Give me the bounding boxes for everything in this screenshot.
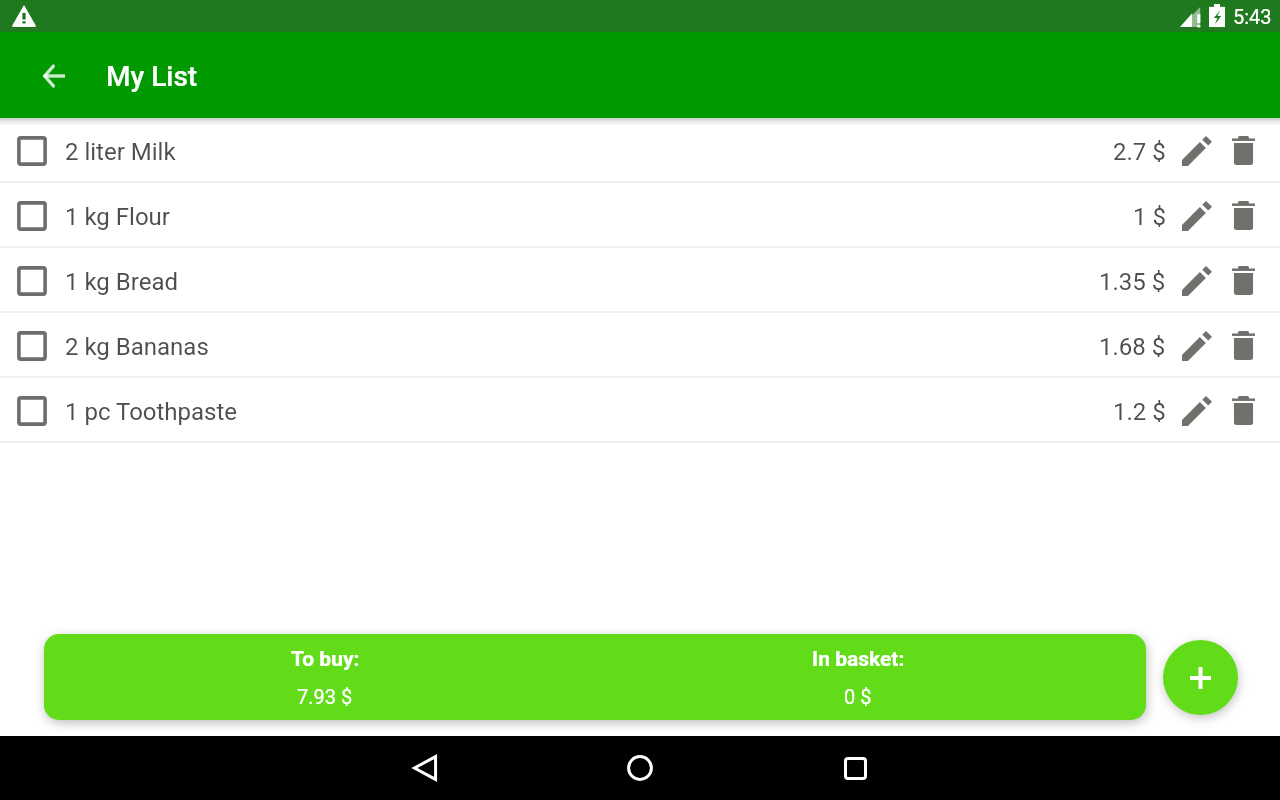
staticText: 1.2 $ [1113, 398, 1166, 426]
staticText: In basket: [812, 647, 905, 672]
staticText: 2 kg Bananas [65, 333, 209, 361]
button[interactable]: Delete 1 kg Flour [1221, 193, 1265, 237]
staticText: 1.68 $ [1099, 333, 1166, 361]
button[interactable]: To buy: [44, 634, 1146, 720]
button[interactable]: Delete 1 kg Bread [1221, 258, 1265, 302]
button[interactable]: Back [30, 52, 78, 100]
button[interactable]: Toggle 1 pc Toothpaste [9, 388, 55, 434]
button[interactable]: Toggle 1 kg Flour [0, 183, 1280, 246]
button[interactable]: Edit 1 kg Bread [1175, 259, 1219, 303]
staticText: 1 kg Flour [65, 203, 170, 231]
staticText: To buy: [291, 647, 360, 672]
staticText: 1 kg Bread [65, 268, 178, 296]
button[interactable]: Delete 2 kg Bananas [1221, 323, 1265, 367]
button[interactable]: Toggle 1 kg Bread [9, 258, 55, 304]
button[interactable]: Toggle 2 kg Bananas [0, 313, 1280, 376]
button[interactable]: Toggle 2 liter Milk [9, 128, 55, 174]
button[interactable]: Toggle 1 kg Bread [0, 248, 1280, 311]
button[interactable]: Toggle 1 pc Toothpaste [0, 378, 1280, 441]
staticText: My List [106, 60, 198, 93]
staticText: 7.93 $ [297, 685, 353, 708]
button[interactable]: Home [615, 743, 665, 793]
button[interactable]: Recents [830, 743, 880, 793]
button[interactable]: Add item [1163, 640, 1238, 715]
staticText: 1 $ [1133, 203, 1166, 231]
button[interactable]: Edit 1 kg Flour [1175, 194, 1219, 238]
staticText: 1 pc Toothpaste [65, 398, 238, 426]
button[interactable]: Back [400, 743, 450, 793]
button[interactable]: Delete 1 pc Toothpaste [1221, 388, 1265, 432]
staticText: 2.7 $ [1113, 138, 1166, 166]
staticText: 2 liter Milk [65, 138, 176, 166]
button[interactable]: Toggle 2 kg Bananas [9, 323, 55, 369]
button[interactable]: Toggle 2 liter Milk [0, 118, 1280, 181]
staticText: 1.35 $ [1099, 268, 1166, 296]
staticText: 0 $ [844, 685, 872, 708]
button[interactable]: Delete 2 liter Milk [1221, 128, 1265, 172]
button[interactable]: Edit 1 pc Toothpaste [1175, 389, 1219, 433]
button[interactable]: Toggle 1 kg Flour [9, 193, 55, 239]
button[interactable]: Edit 2 kg Bananas [1175, 324, 1219, 368]
staticText: 5:43 [1233, 5, 1272, 28]
button[interactable]: Edit 2 liter Milk [1175, 129, 1219, 173]
